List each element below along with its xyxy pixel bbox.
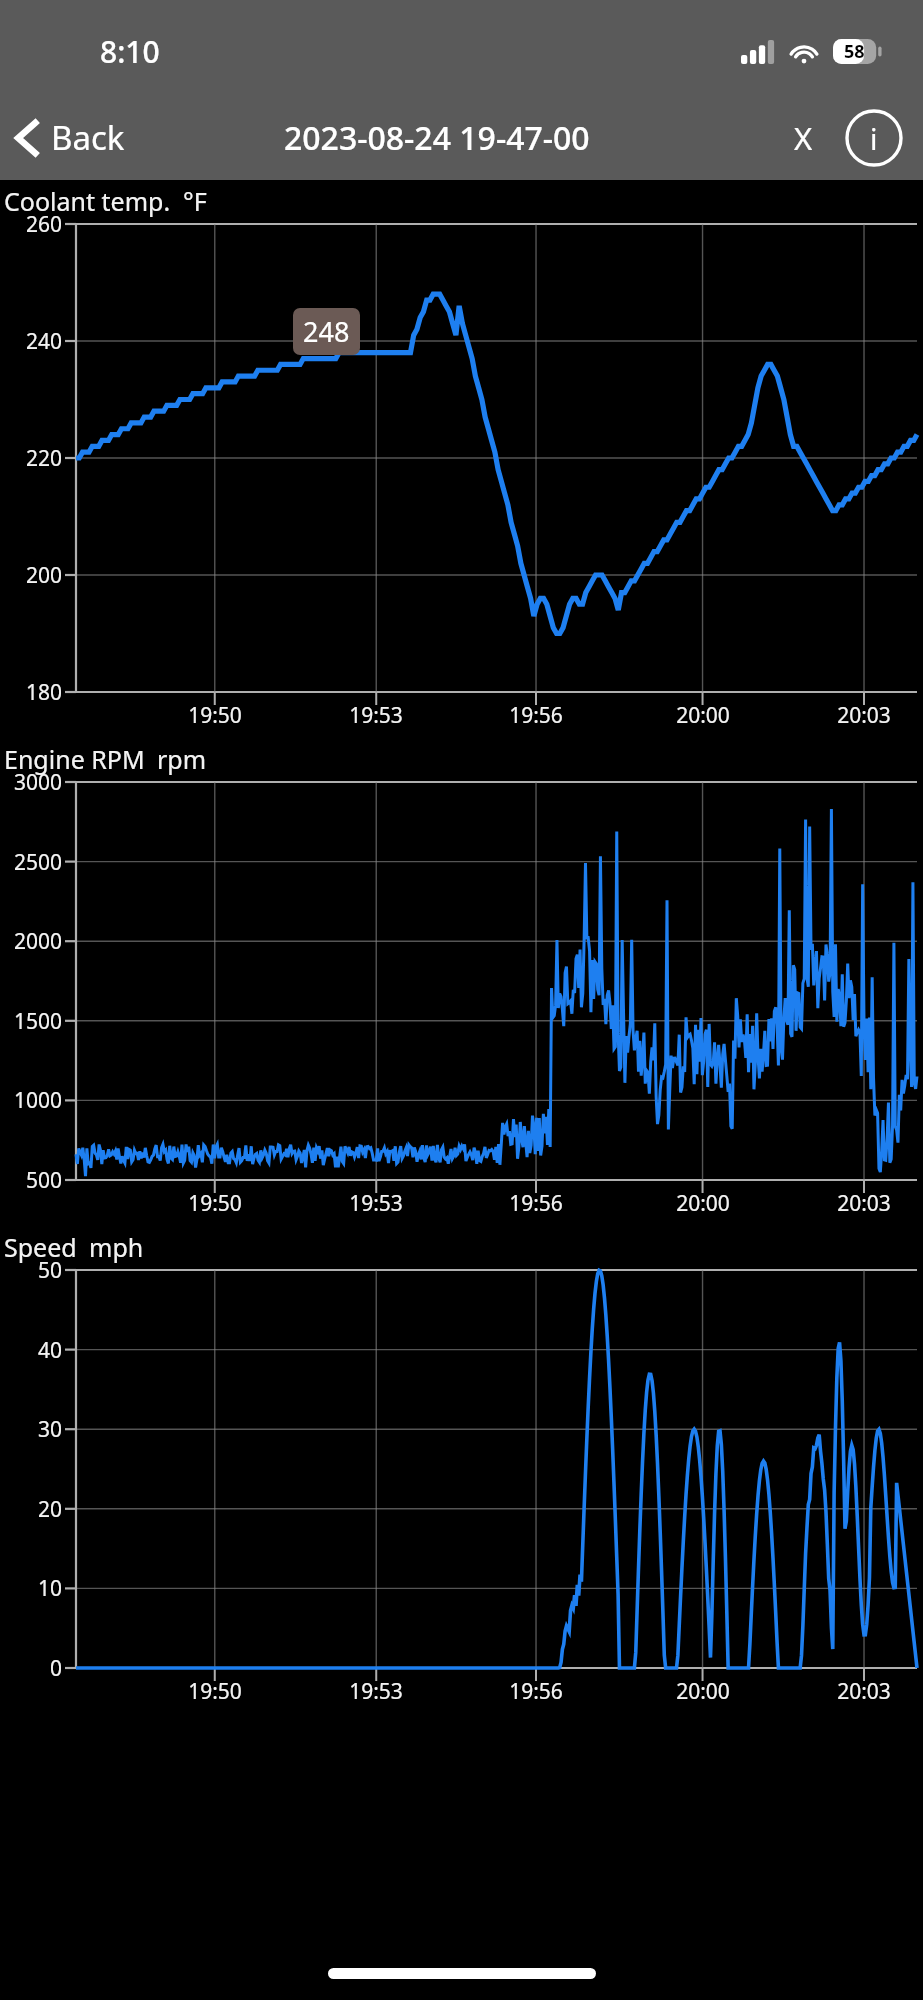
staticText: 50	[0, 1256, 62, 1285]
staticText: 200	[0, 561, 62, 590]
staticText: 2500	[0, 848, 62, 877]
staticText: 220	[0, 444, 62, 473]
staticText: 58	[844, 39, 865, 64]
staticText: Speed	[4, 1230, 77, 1264]
staticText: 248	[303, 313, 350, 350]
button[interactable]: Back	[0, 107, 139, 168]
staticText: Coolant temp.	[4, 184, 171, 218]
staticText: 1500	[0, 1007, 62, 1036]
staticText: rpm	[157, 742, 207, 776]
staticText: mph	[89, 1230, 144, 1264]
staticText: 19:50	[165, 1189, 265, 1218]
staticText: 20:00	[653, 701, 753, 730]
staticText: 260	[0, 210, 62, 239]
staticText: 500	[0, 1166, 62, 1195]
staticText: 20:03	[814, 1189, 914, 1218]
staticText: Engine RPM	[4, 742, 145, 776]
staticText: 19:53	[326, 1677, 426, 1706]
staticText: i	[870, 119, 878, 158]
staticText: 10	[0, 1574, 62, 1603]
staticText: 19:56	[486, 1677, 586, 1706]
staticText: 20	[0, 1495, 62, 1524]
staticText: 19:56	[486, 1189, 586, 1218]
button[interactable]: Info	[843, 107, 905, 169]
staticText: 2000	[0, 927, 62, 956]
staticText: °F	[183, 184, 207, 218]
staticText: 19:53	[326, 1189, 426, 1218]
button[interactable]: Close	[773, 108, 833, 168]
staticText: 20:00	[653, 1189, 753, 1218]
staticText: 180	[0, 678, 62, 707]
staticText: 30	[0, 1415, 62, 1444]
staticText: 20:00	[653, 1677, 753, 1706]
staticText: X	[794, 117, 813, 159]
staticText: 40	[0, 1336, 62, 1365]
staticText: 20:03	[814, 701, 914, 730]
staticText: Back	[51, 115, 125, 160]
staticText: 240	[0, 327, 62, 356]
staticText: 3000	[0, 768, 62, 797]
staticText: 19:53	[326, 701, 426, 730]
staticText: 1000	[0, 1086, 62, 1115]
staticText: 0	[0, 1654, 62, 1683]
button[interactable]: 248	[293, 308, 360, 355]
staticText: 2023-08-24 19-47-00	[284, 116, 590, 160]
staticText: 19:56	[486, 701, 586, 730]
staticText: 19:50	[165, 1677, 265, 1706]
staticText: 20:03	[814, 1677, 914, 1706]
staticText: 19:50	[165, 701, 265, 730]
staticText: 8:10	[100, 31, 160, 72]
